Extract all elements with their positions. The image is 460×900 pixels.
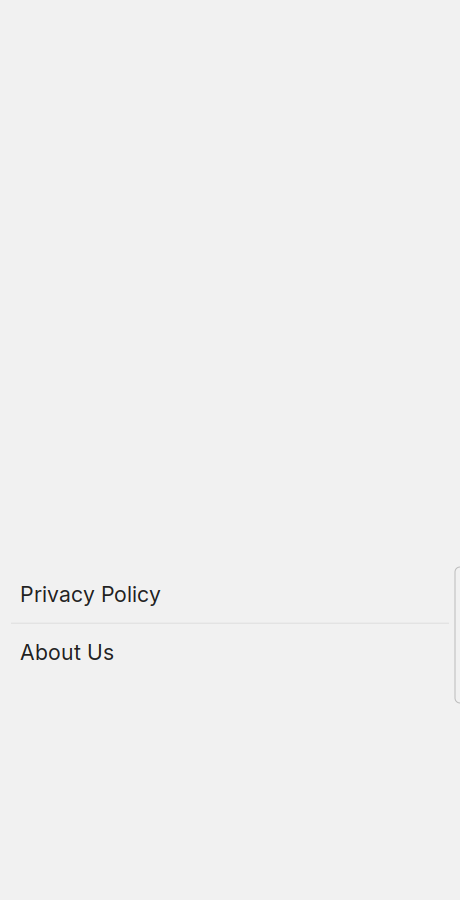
button[interactable]: About Us bbox=[0, 624, 460, 681]
button[interactable]: Privacy Policy bbox=[0, 566, 460, 623]
staticText: About Us bbox=[20, 639, 114, 665]
staticText: Privacy Policy bbox=[20, 581, 161, 607]
